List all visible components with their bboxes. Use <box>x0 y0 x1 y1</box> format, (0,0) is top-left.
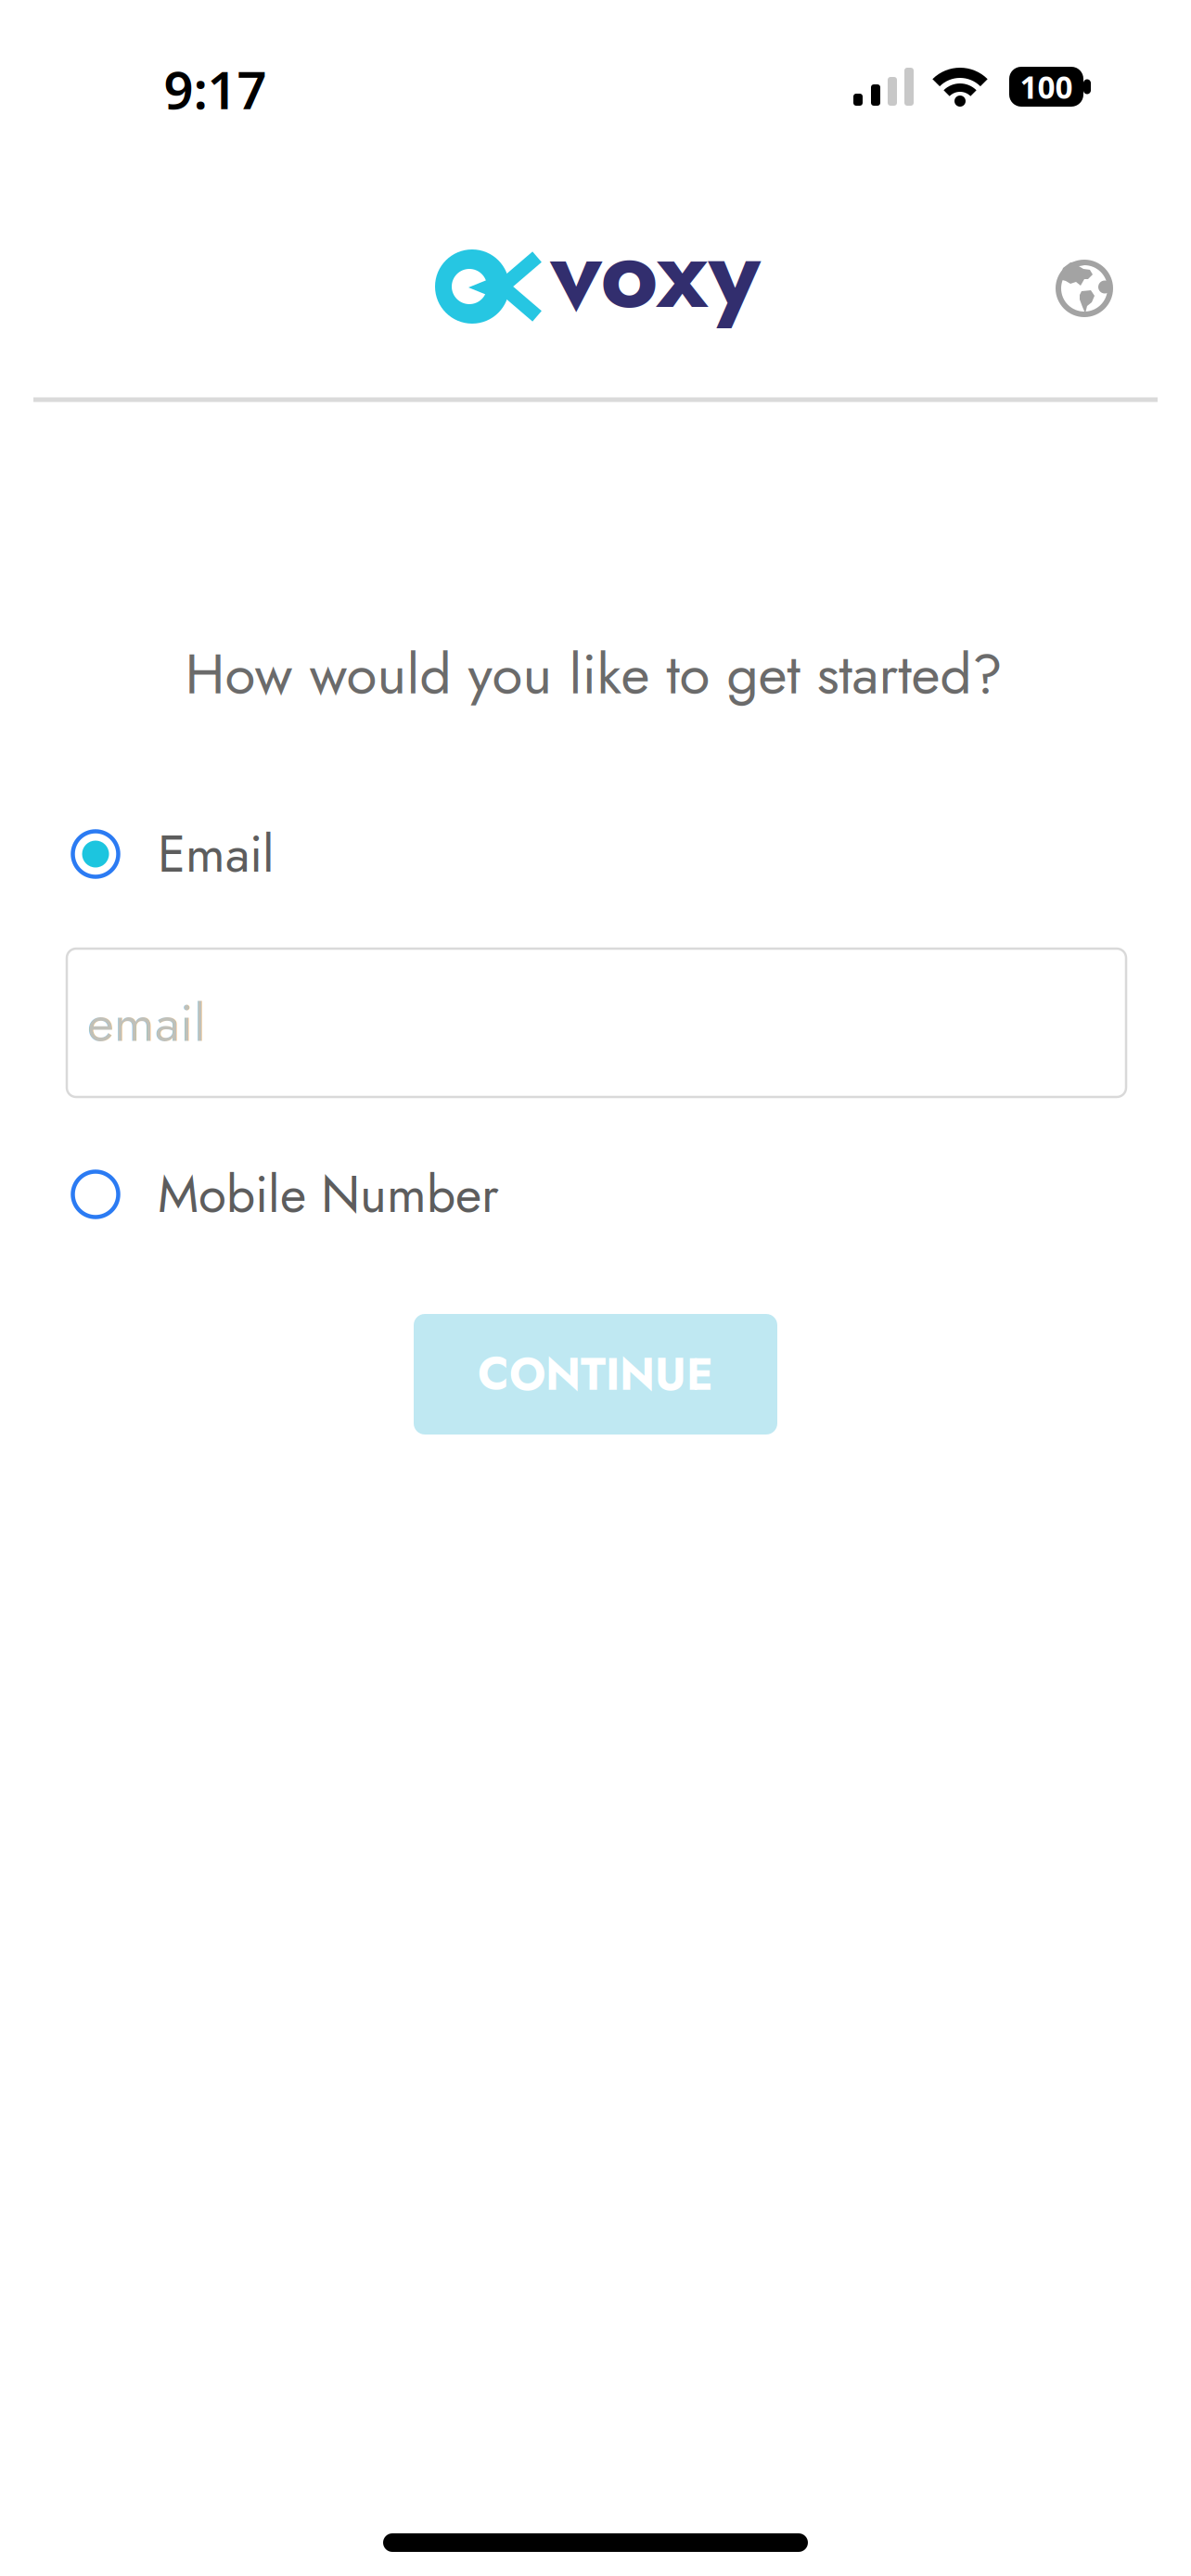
staticText: voxy <box>550 201 761 344</box>
staticText: 9:17 <box>164 55 267 124</box>
staticText: CONTINUE <box>478 1342 713 1406</box>
staticText: email <box>87 985 206 1060</box>
staticText: How would you like to get started? <box>185 634 1002 714</box>
button[interactable]: Email <box>70 817 905 891</box>
button[interactable]: CONTINUE <box>414 1314 777 1435</box>
staticText: 100 <box>1020 66 1073 107</box>
textField[interactable]: email <box>87 985 1106 1060</box>
staticText: Mobile Number <box>158 1158 499 1231</box>
button[interactable]: Change language <box>1051 255 1118 322</box>
staticText: Email <box>158 817 275 891</box>
button[interactable]: Mobile Number <box>70 1158 905 1231</box>
